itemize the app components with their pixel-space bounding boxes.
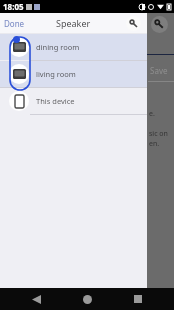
button[interactable]: This device bbox=[0, 88, 147, 114]
button[interactable]: Done bbox=[4, 18, 25, 29]
staticText: Save bbox=[150, 65, 168, 76]
button[interactable]: Recents bbox=[123, 288, 153, 310]
button[interactable]: Back bbox=[21, 288, 51, 310]
staticText: en. bbox=[149, 139, 160, 149]
staticText: Speaker bbox=[56, 17, 91, 29]
staticText: living room bbox=[36, 69, 76, 79]
staticText: This device bbox=[36, 96, 75, 106]
staticText: e. bbox=[149, 109, 155, 119]
staticText: sic on bbox=[149, 129, 168, 139]
button[interactable]: dining room bbox=[0, 34, 147, 60]
staticText: 18:05 bbox=[3, 1, 24, 12]
staticText: dining room bbox=[36, 42, 80, 52]
button[interactable]: Settings bbox=[126, 16, 141, 31]
button[interactable]: Settings bbox=[151, 16, 168, 33]
button[interactable]: living room bbox=[0, 61, 147, 87]
button[interactable]: Home bbox=[72, 288, 102, 310]
staticText: Done bbox=[4, 18, 25, 29]
